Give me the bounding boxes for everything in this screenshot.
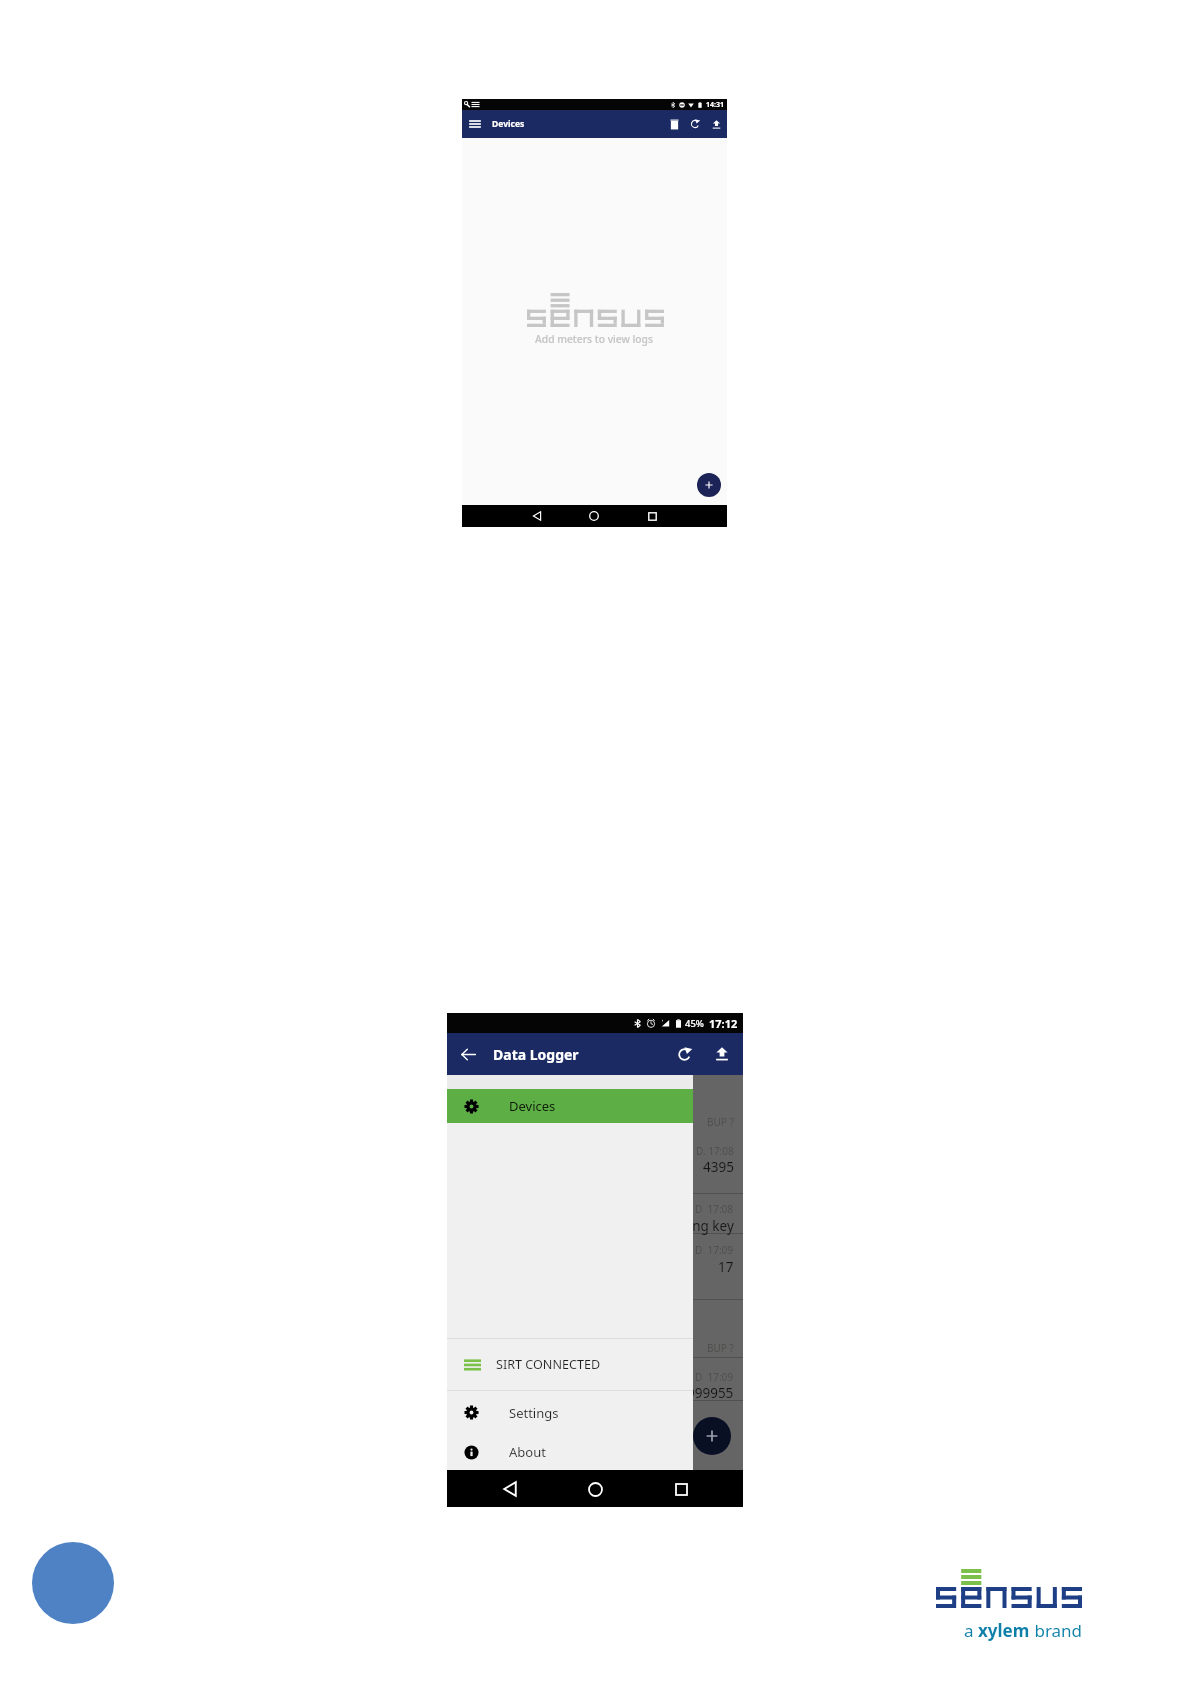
button[interactable]: Back xyxy=(527,506,547,526)
staticText: brand xyxy=(1030,1619,1083,1641)
button[interactable]: Upload xyxy=(707,115,725,133)
button[interactable]: Recents xyxy=(642,506,662,526)
staticText: Data Logger xyxy=(493,1045,579,1064)
button[interactable]: Settings xyxy=(447,1391,693,1434)
button[interactable]: Back xyxy=(496,1475,524,1503)
staticText: D 17:08 xyxy=(695,1202,734,1216)
staticText: 17:12 xyxy=(709,1016,738,1031)
button[interactable]: SIRT CONNECTED xyxy=(447,1339,693,1390)
button[interactable]: Devices xyxy=(447,1089,693,1123)
button[interactable]: Upload xyxy=(708,1040,736,1068)
staticText: Add meters to view logs xyxy=(535,332,654,346)
button[interactable]: Refresh xyxy=(686,115,704,133)
staticText: ong key xyxy=(684,1217,734,1235)
button[interactable]: Refresh xyxy=(670,1040,698,1068)
staticText: Devices xyxy=(509,1097,556,1115)
staticText: D 17:09 xyxy=(695,1243,734,1257)
staticText: About xyxy=(509,1443,546,1461)
staticText: Devices xyxy=(492,118,525,130)
staticText: Settings xyxy=(509,1404,559,1422)
staticText: 14:31 xyxy=(706,100,724,110)
button[interactable]: Add device xyxy=(697,473,721,497)
button[interactable]: Recents xyxy=(667,1475,695,1503)
button[interactable]: Home xyxy=(581,1475,609,1503)
staticText: SIRT CONNECTED xyxy=(496,1356,601,1373)
staticText: xylem xyxy=(978,1619,1030,1641)
staticText: BUP ? xyxy=(707,1115,734,1129)
staticText: 45% xyxy=(685,1017,704,1030)
staticText: a xyxy=(964,1619,978,1641)
button[interactable]: Home xyxy=(584,506,604,526)
button[interactable]: About xyxy=(447,1434,693,1470)
staticText: D. 17:08 xyxy=(696,1144,734,1158)
staticText: 17 xyxy=(718,1258,734,1276)
staticText: BUP ? xyxy=(707,1341,734,1355)
staticText: 4395 xyxy=(703,1158,734,1176)
staticText: D 17:09 xyxy=(695,1370,734,1384)
button[interactable]: Add xyxy=(693,1417,731,1455)
button[interactable]: Delete xyxy=(665,115,683,133)
button[interactable]: Back xyxy=(455,1041,481,1067)
button[interactable]: Open navigation drawer xyxy=(466,115,484,133)
staticText: 999955 xyxy=(687,1384,734,1402)
